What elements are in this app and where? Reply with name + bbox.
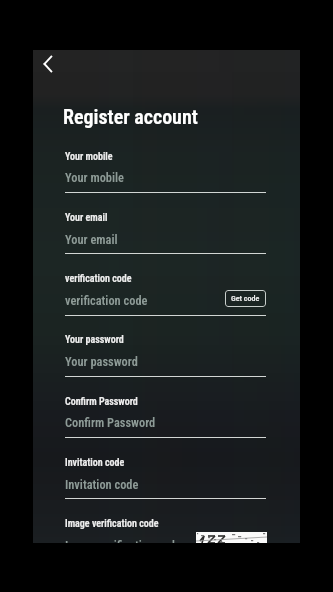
- staticText: Register account: [63, 105, 198, 128]
- staticText: Your mobile: [65, 170, 124, 185]
- staticText: Invitation code: [65, 457, 125, 469]
- staticText: Your password: [65, 334, 124, 346]
- staticText: Your mobile: [65, 151, 113, 163]
- staticText: Your password: [65, 354, 138, 369]
- staticText: verification code: [65, 273, 132, 285]
- staticText: Your email: [65, 232, 118, 247]
- button[interactable]: Refresh verification image: [196, 532, 267, 543]
- staticText: Confirm Password: [65, 396, 138, 408]
- staticText: Your email: [65, 212, 108, 224]
- staticText: Invitation code: [65, 477, 139, 492]
- staticText: verification code: [65, 293, 148, 308]
- staticText: Image verification code: [65, 538, 181, 543]
- button[interactable]: Back: [35, 51, 61, 77]
- staticText: Confirm Password: [65, 415, 156, 430]
- staticText: Get code: [231, 294, 260, 303]
- staticText: Image verification code: [65, 518, 159, 530]
- button[interactable]: Get code: [225, 290, 266, 307]
